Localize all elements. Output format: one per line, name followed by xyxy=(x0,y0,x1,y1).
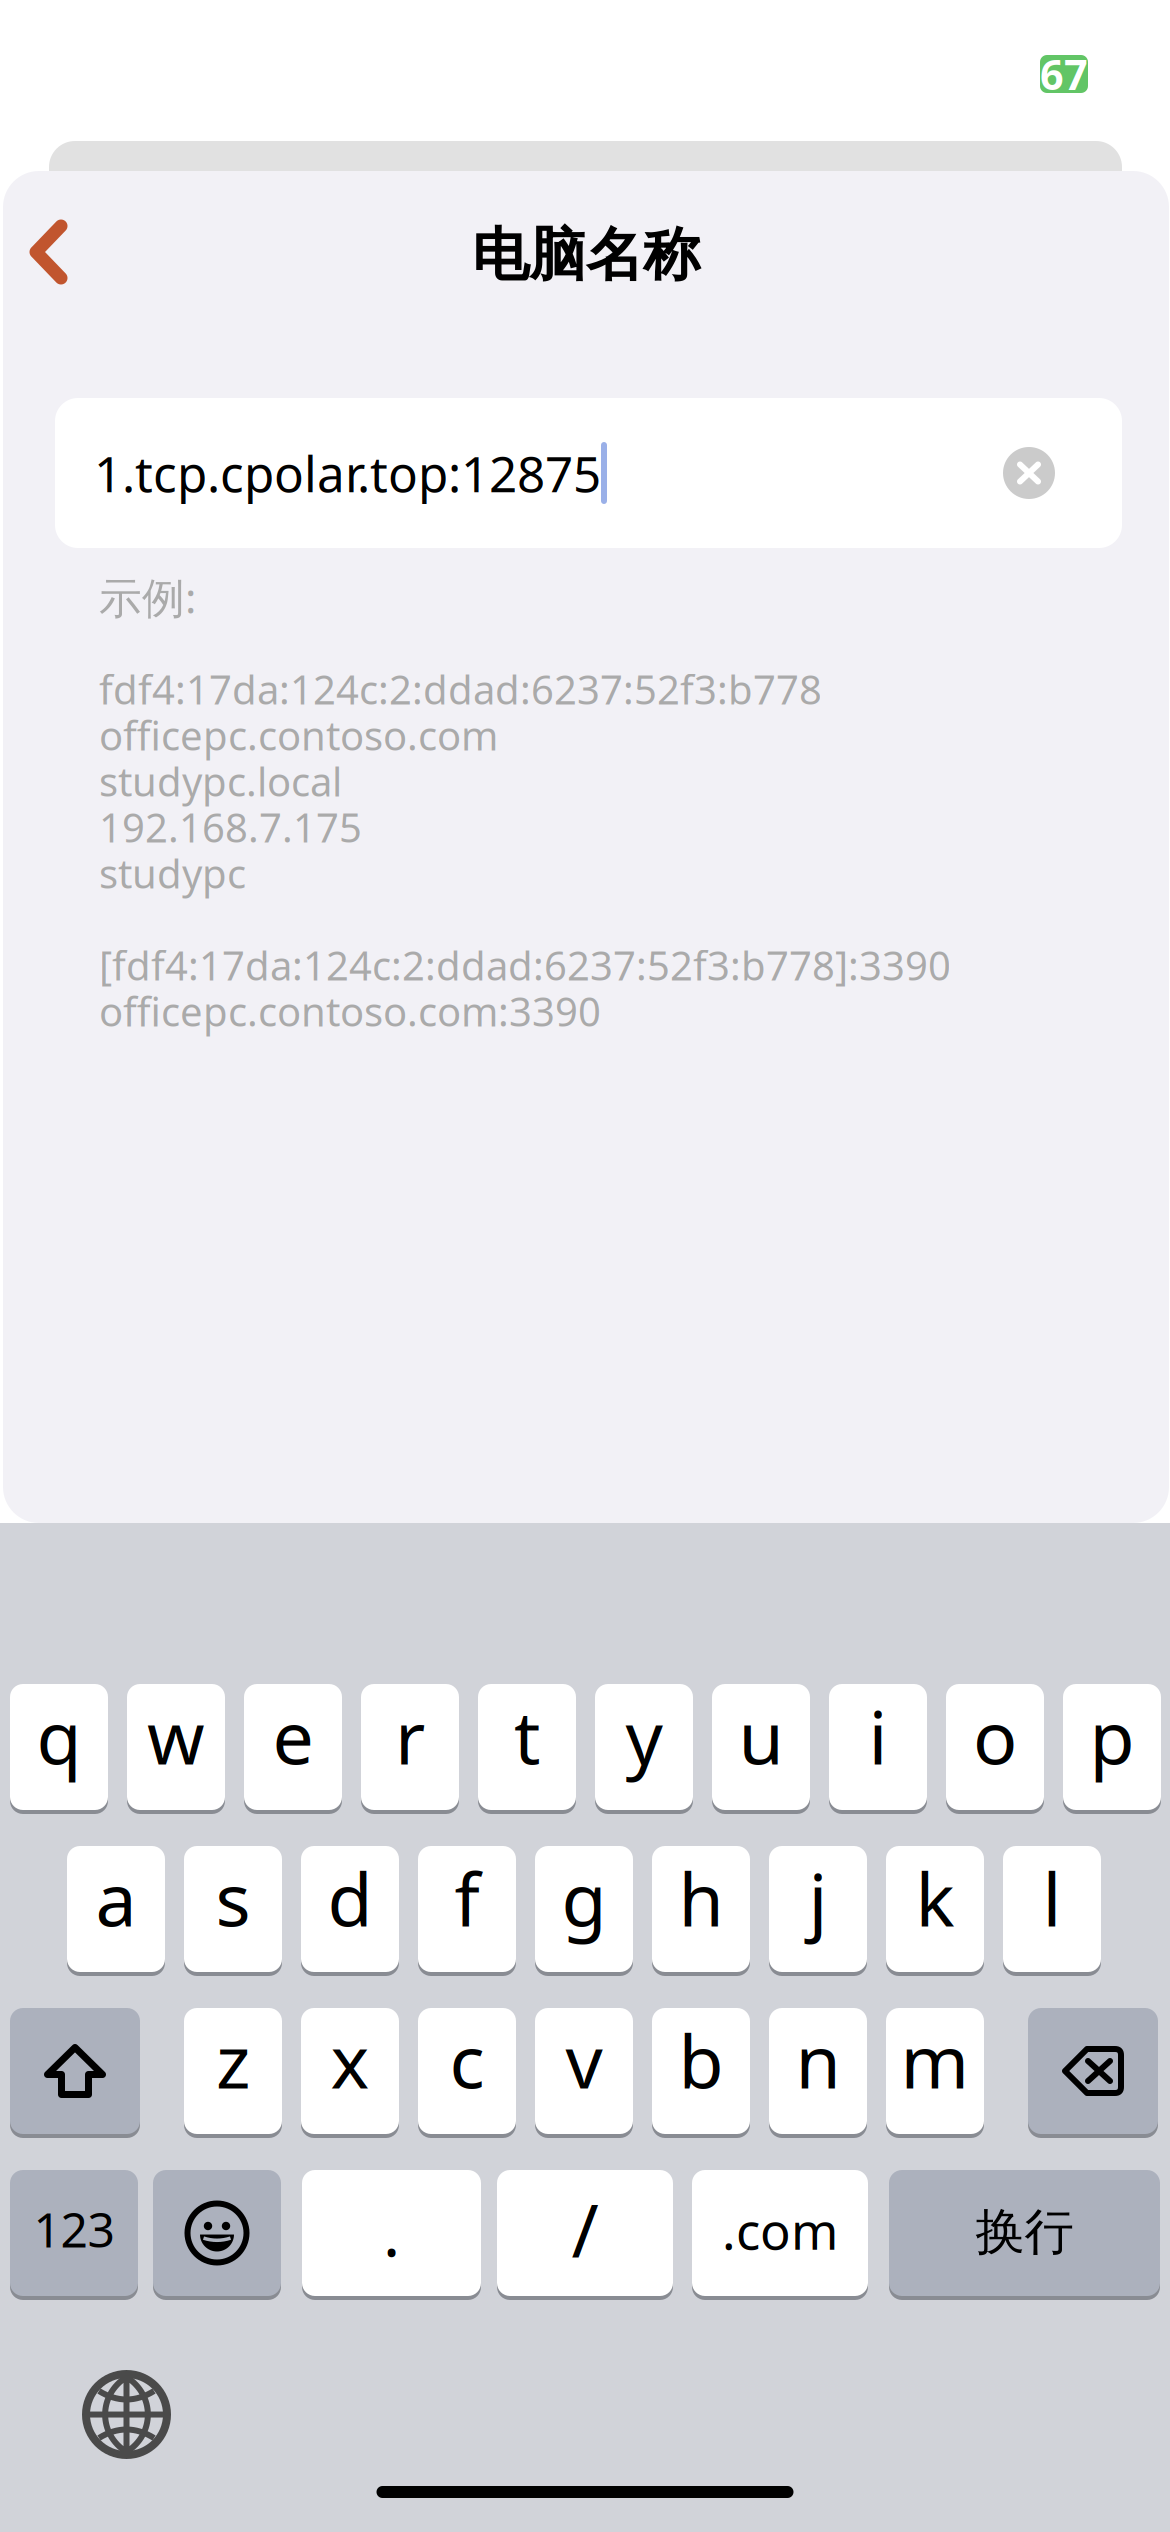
button[interactable]: t xyxy=(478,1682,576,1812)
staticText: d xyxy=(327,1849,372,1947)
button[interactable]: n xyxy=(769,2006,867,2136)
staticText: 67 xyxy=(1040,47,1088,101)
staticText: o xyxy=(973,1687,1017,1785)
staticText: u xyxy=(738,1687,783,1785)
button[interactable]: r xyxy=(361,1682,459,1812)
staticText: .com xyxy=(722,2196,838,2264)
button[interactable]: k xyxy=(886,1844,984,1974)
button[interactable]: d xyxy=(301,1844,399,1974)
staticText: 123 xyxy=(33,2197,114,2261)
button[interactable]: .com xyxy=(692,2168,868,2298)
staticText: 192.168.7.175 xyxy=(99,800,362,853)
button[interactable]: s xyxy=(184,1844,282,1974)
button[interactable]: v xyxy=(535,2006,633,2136)
staticText: / xyxy=(571,2180,598,2278)
button[interactable]: a xyxy=(67,1844,165,1974)
staticText: officepc.contoso.com:3390 xyxy=(99,984,601,1037)
button[interactable]: g xyxy=(535,1844,633,1974)
button[interactable]: p xyxy=(1063,1682,1161,1812)
staticText: h xyxy=(678,1849,723,1947)
staticText: studypc xyxy=(99,846,246,899)
button[interactable]: f xyxy=(418,1844,516,1974)
staticText: l xyxy=(1042,1849,1061,1947)
button[interactable]: c xyxy=(418,2006,516,2136)
button[interactable]: j xyxy=(769,1844,867,1974)
staticText: 换行 xyxy=(975,2202,1073,2262)
button[interactable]: 换行 xyxy=(889,2168,1160,2298)
button[interactable]: z xyxy=(184,2006,282,2136)
button[interactable]: y xyxy=(595,1682,693,1812)
staticText: x xyxy=(330,2011,369,2109)
button[interactable]: e xyxy=(244,1682,342,1812)
staticText: b xyxy=(678,2011,723,2109)
staticText: p xyxy=(1089,1687,1134,1785)
staticText: 1.tcp.cpolar.top:12875 xyxy=(94,440,601,506)
staticText: fdf4:17da:124c:2:ddad:6237:52f3:b778 xyxy=(99,662,822,715)
button[interactable]: x xyxy=(301,2006,399,2136)
button[interactable]: / xyxy=(497,2168,673,2298)
button[interactable]: Delete xyxy=(1028,2006,1158,2136)
staticText: j xyxy=(808,1849,827,1947)
staticText: n xyxy=(795,2011,840,2109)
staticText: s xyxy=(215,1849,250,1947)
button[interactable]: o xyxy=(946,1682,1044,1812)
button[interactable]: Emoji xyxy=(153,2168,281,2298)
button[interactable]: l xyxy=(1003,1844,1101,1974)
button[interactable]: q xyxy=(10,1682,108,1812)
button[interactable]: u xyxy=(712,1682,810,1812)
staticText: 示例: xyxy=(99,569,196,625)
button[interactable]: h xyxy=(652,1844,750,1974)
staticText: 电脑名称 xyxy=(472,220,700,290)
button[interactable]: 123 xyxy=(10,2168,138,2298)
staticText: y xyxy=(625,1687,662,1785)
staticText: [fdf4:17da:124c:2:ddad:6237:52f3:b778]:3… xyxy=(99,938,951,991)
staticText: q xyxy=(36,1687,81,1785)
staticText: a xyxy=(95,1849,136,1947)
staticText: g xyxy=(561,1849,606,1947)
button[interactable]: . xyxy=(302,2168,481,2298)
staticText: i xyxy=(868,1687,887,1785)
button[interactable]: Next keyboard xyxy=(86,2374,167,2455)
staticText: v xyxy=(565,2011,602,2109)
staticText: r xyxy=(395,1687,425,1785)
button[interactable]: b xyxy=(652,2006,750,2136)
button[interactable]: m xyxy=(886,2006,984,2136)
staticText: c xyxy=(449,2011,484,2109)
staticText: t xyxy=(514,1687,540,1785)
button[interactable]: Shift xyxy=(10,2006,140,2136)
button[interactable]: Clear text xyxy=(981,425,1077,521)
staticText: f xyxy=(454,1849,479,1947)
button[interactable]: i xyxy=(829,1682,927,1812)
button[interactable]: Back xyxy=(3,171,108,303)
button[interactable]: w xyxy=(127,1682,225,1812)
staticText: . xyxy=(383,2189,400,2274)
staticText: m xyxy=(900,2011,969,2109)
staticText: officepc.contoso.com xyxy=(99,708,498,761)
staticText: z xyxy=(216,2011,250,2109)
staticText: w xyxy=(147,1687,205,1785)
staticText: e xyxy=(272,1687,313,1785)
staticText: studypc.local xyxy=(99,754,342,807)
staticText: k xyxy=(915,1849,954,1947)
